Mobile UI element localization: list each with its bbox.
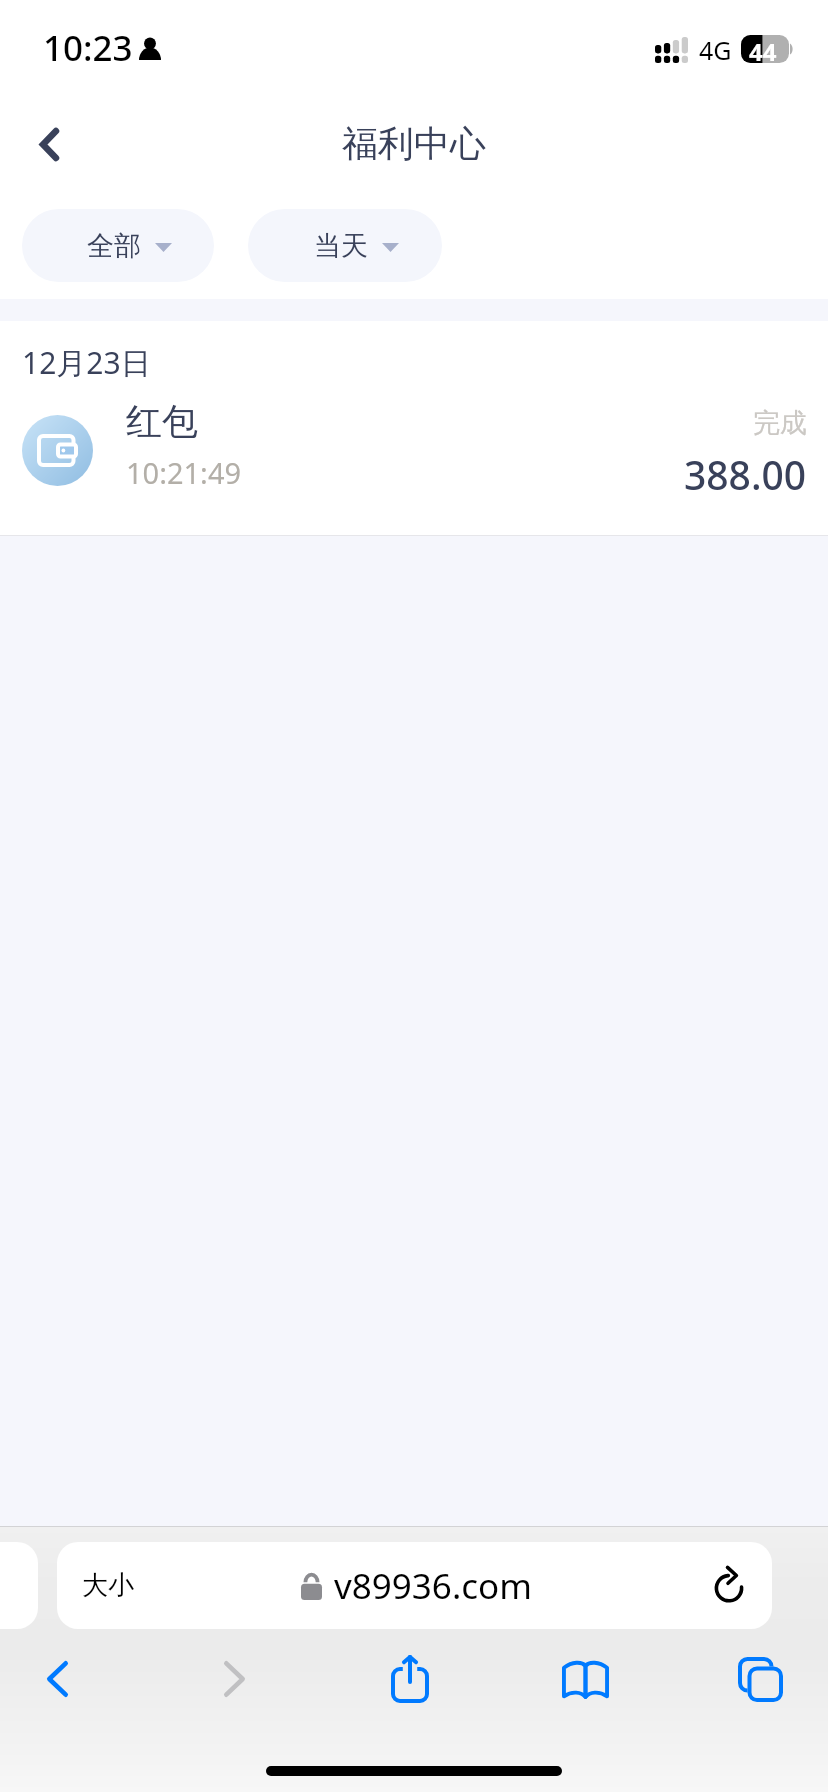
staticText: 388.00 [684,448,807,501]
button[interactable]: 全部 [22,209,214,282]
staticText: v89936.com [334,1562,532,1610]
button[interactable]: Bookmarks [541,1642,629,1716]
button[interactable]: 当天 [248,209,442,282]
staticText: 10:21:49 [126,453,242,492]
button[interactable]: 红包 [0,394,828,504]
button[interactable]: Share [366,1642,454,1716]
staticText: 红包 [126,399,198,444]
button[interactable]: Back [19,114,79,174]
button[interactable]: Tabs [716,1642,804,1716]
button[interactable]: Back [13,1642,101,1716]
staticText: 44 [749,35,777,63]
staticText: 完成 [753,406,807,440]
staticText: 10:23 [43,24,133,72]
staticText: 全部 [87,229,141,263]
staticText: 福利中心 [342,121,486,166]
button[interactable]: Forward [190,1642,278,1716]
staticText: 4G [699,33,732,67]
button[interactable]: 大小 [57,1542,772,1629]
staticText: 大小 [82,1569,134,1602]
staticText: 当天 [314,229,368,263]
staticText: 12月23日 [22,342,151,383]
